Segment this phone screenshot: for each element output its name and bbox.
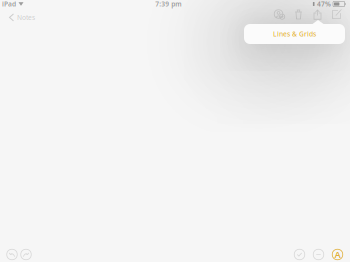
button[interactable]: Undo [5,247,19,262]
staticText: 7:39 pm [155,0,181,8]
button[interactable]: New Note [327,7,346,22]
button[interactable]: Share [308,7,327,22]
button[interactable]: Text Format [328,247,347,262]
staticText: Notes [17,13,35,22]
staticText: A [334,248,340,261]
button[interactable]: Add People [270,7,289,22]
button[interactable]: Insert [309,247,328,262]
button[interactable]: Lines & Grids [244,20,345,44]
button[interactable]: Delete [289,7,308,22]
staticText: Lines & Grids [273,30,316,38]
button[interactable]: Checklist [290,247,309,262]
button[interactable]: Notes [5,10,41,25]
staticText: 47% [317,0,331,8]
staticText: iPad [2,0,16,8]
button[interactable]: Redo [19,247,33,262]
